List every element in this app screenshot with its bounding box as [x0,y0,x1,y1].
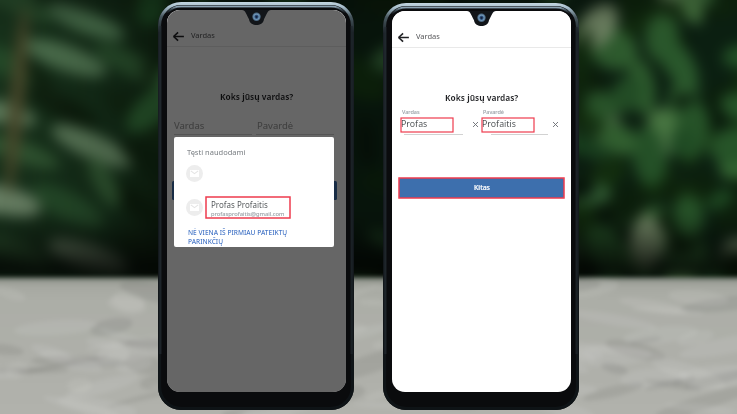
staticText: Vardas [402,108,420,115]
button[interactable]: Kitas [172,181,337,200]
button[interactable] [206,197,290,218]
button[interactable]: Back [392,26,414,48]
button[interactable]: Clear Pavardė [549,118,561,130]
button[interactable]: Back [167,25,189,47]
button[interactable]: Kitas [399,178,564,198]
staticText: Pavardė [257,119,294,132]
staticText: Vardas [191,30,215,40]
button[interactable]: NĖ VIENA IŠ PIRMIAU PATEIKTŲ PARINKČIŲ [188,228,288,246]
staticText: Vardas [174,119,205,132]
button[interactable]: Clear Vardas [469,118,481,130]
staticText: Vardas [416,31,440,41]
staticText: Profaitis [482,118,516,130]
staticText: Koks jūsų vardas? [445,92,519,103]
staticText: NĖ VIENA IŠ PIRMIAU PATEIKTŲ PARINKČIŲ [188,228,288,246]
staticText: Tęsti naudodami [187,147,246,157]
button[interactable]: Account [186,165,203,182]
button[interactable]: Account [186,199,203,216]
staticText: Koks jūsų vardas? [220,91,294,102]
button[interactable]: Profas [401,118,453,132]
staticText: Kitas [474,183,490,193]
staticText: profasprofaitis@gmail.com [211,210,285,218]
staticText: Profas [401,118,428,130]
button[interactable]: Profaitis [482,118,534,132]
staticText: Pavardė [483,108,504,115]
staticText: Profas Profaitis [211,199,268,210]
